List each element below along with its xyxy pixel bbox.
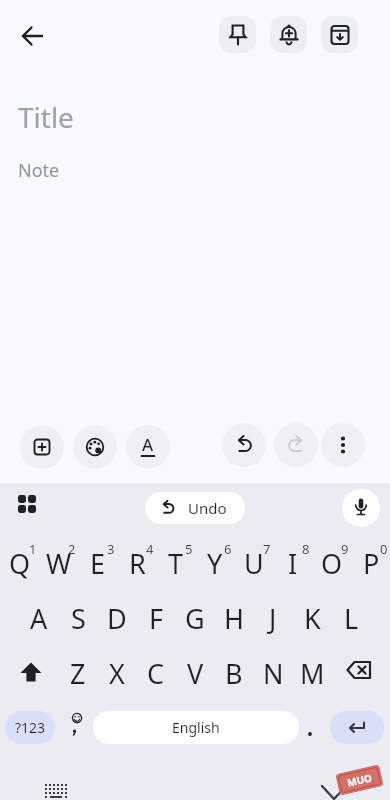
staticText: X — [109, 655, 125, 692]
button[interactable]: L — [332, 592, 370, 644]
staticText: H — [224, 600, 245, 637]
staticText: P — [363, 545, 380, 582]
staticText: R — [129, 545, 146, 582]
button[interactable]: N — [254, 647, 292, 699]
button[interactable]: Y — [196, 537, 234, 589]
staticText: N — [263, 655, 284, 692]
button[interactable] — [334, 648, 384, 698]
button[interactable] — [270, 16, 307, 53]
staticText: Z — [70, 655, 86, 692]
staticText: G — [185, 600, 205, 637]
staticText: 3 — [107, 540, 115, 558]
button[interactable]: X — [98, 647, 136, 699]
staticText: B — [225, 655, 243, 692]
staticText: MUO — [346, 770, 373, 790]
button[interactable] — [8, 648, 54, 698]
button[interactable] — [274, 423, 318, 467]
staticText: A — [142, 433, 154, 456]
button[interactable]: S — [59, 592, 97, 644]
staticText: E — [90, 545, 106, 582]
button[interactable]: Q — [1, 537, 39, 589]
button[interactable]: K — [293, 592, 331, 644]
staticText: F — [149, 600, 164, 637]
button[interactable] — [12, 15, 54, 57]
button[interactable] — [60, 711, 90, 744]
button[interactable]: D — [98, 592, 136, 644]
staticText: Note — [18, 158, 60, 183]
staticText: V — [187, 655, 204, 692]
staticText: 0 — [380, 540, 388, 558]
button[interactable]: T — [157, 537, 195, 589]
staticText: 6 — [224, 540, 232, 558]
staticText: S — [71, 600, 86, 637]
button[interactable]: Z — [59, 647, 97, 699]
button[interactable]: G — [176, 592, 214, 644]
button[interactable]: H — [215, 592, 253, 644]
button[interactable] — [342, 489, 380, 527]
staticText: ?123 — [15, 718, 46, 737]
button[interactable]: R — [118, 537, 156, 589]
button[interactable] — [222, 423, 266, 467]
staticText: T — [168, 545, 184, 582]
button[interactable]: I — [274, 537, 312, 589]
staticText: O — [321, 545, 343, 582]
button[interactable] — [9, 486, 45, 522]
button[interactable]: W — [40, 537, 78, 589]
staticText: C — [147, 655, 165, 692]
button[interactable]: M — [293, 647, 331, 699]
button[interactable]: English — [93, 711, 299, 744]
staticText: 9 — [341, 540, 349, 558]
button[interactable]: V — [176, 647, 214, 699]
staticText: English — [172, 718, 220, 737]
button[interactable]: ?123 — [5, 711, 55, 744]
staticText: A — [30, 600, 48, 637]
button[interactable]: A — [126, 425, 170, 469]
staticText: L — [344, 600, 359, 637]
button[interactable] — [73, 425, 117, 469]
button[interactable]: U — [235, 537, 273, 589]
button[interactable] — [20, 425, 64, 469]
staticText: Undo — [188, 498, 227, 518]
staticText: J — [269, 600, 277, 637]
button[interactable] — [321, 16, 358, 53]
button[interactable]: B — [215, 647, 253, 699]
button[interactable]: O — [313, 537, 351, 589]
staticText: 1 — [29, 540, 37, 558]
staticText: 4 — [146, 540, 154, 558]
staticText: Title — [18, 98, 74, 136]
staticText: K — [304, 600, 321, 637]
button[interactable]: Undo — [145, 492, 245, 524]
button[interactable]: C — [137, 647, 175, 699]
button[interactable] — [321, 423, 365, 467]
button[interactable]: P — [352, 537, 390, 589]
button[interactable] — [301, 711, 325, 744]
button[interactable]: A — [20, 592, 58, 644]
button[interactable]: E — [79, 537, 117, 589]
staticText: M — [300, 655, 325, 692]
button[interactable] — [330, 711, 384, 744]
staticText: Y — [207, 545, 223, 582]
staticText: D — [107, 600, 127, 637]
button[interactable]: J — [254, 592, 292, 644]
staticText: 8 — [302, 540, 310, 558]
staticText: W — [46, 545, 72, 582]
staticText: 2 — [68, 540, 76, 558]
staticText: 7 — [263, 540, 271, 558]
staticText: 5 — [185, 540, 193, 558]
button[interactable] — [219, 16, 256, 53]
staticText: U — [244, 545, 264, 582]
staticText: I — [288, 545, 298, 582]
staticText: Q — [9, 545, 31, 582]
button[interactable]: F — [137, 592, 175, 644]
